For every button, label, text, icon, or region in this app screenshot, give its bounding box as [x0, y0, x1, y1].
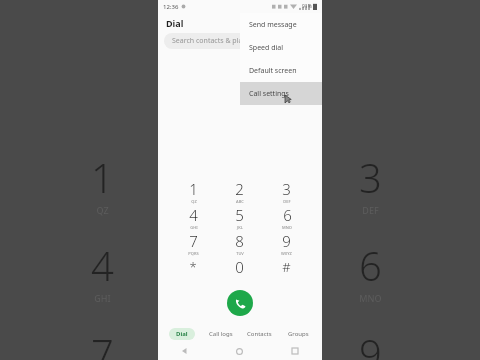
button[interactable]: Groups: [279, 326, 318, 342]
staticText: 3: [282, 179, 291, 199]
staticText: 7: [189, 231, 198, 251]
button[interactable]: 6: [263, 204, 310, 230]
staticText: Groups: [288, 330, 309, 338]
button[interactable]: *: [170, 256, 216, 282]
staticText: Speed dial: [249, 43, 284, 53]
button[interactable]: Search contacts & places: [164, 33, 316, 49]
button[interactable]: 8: [216, 230, 263, 256]
staticText: 1: [189, 179, 198, 199]
button[interactable]: Speed dial: [240, 36, 322, 59]
staticText: 6: [283, 205, 292, 225]
button[interactable]: Call logs: [201, 326, 240, 342]
staticText: 3: [359, 150, 382, 204]
button[interactable]: Back: [158, 342, 212, 360]
button[interactable]: 3: [263, 178, 310, 204]
staticText: Send message: [249, 20, 297, 30]
button[interactable]: Home: [212, 342, 267, 360]
button[interactable]: 7: [170, 230, 216, 256]
staticText: QZ: [191, 199, 197, 204]
button[interactable]: Recents: [267, 342, 322, 360]
staticText: 9: [282, 231, 291, 251]
staticText: DEF: [362, 204, 379, 216]
button[interactable]: #: [263, 256, 310, 282]
button[interactable]: Dial: [162, 326, 201, 342]
staticText: WXYZ: [281, 251, 292, 256]
staticText: Call settings: [249, 89, 289, 99]
staticText: Contacts: [247, 330, 272, 338]
staticText: 5: [235, 205, 244, 225]
button[interactable]: 5: [216, 204, 263, 230]
staticText: *: [189, 258, 197, 276]
staticText: GHI: [190, 225, 198, 230]
staticText: MNO: [359, 292, 382, 304]
staticText: 12:36: [163, 3, 179, 11]
staticText: JKL: [237, 225, 243, 230]
staticText: GHI: [94, 292, 111, 304]
button[interactable]: 2: [216, 178, 263, 204]
staticText: MNO: [282, 225, 292, 230]
staticText: 0: [235, 257, 244, 277]
staticText: 8: [235, 231, 244, 251]
staticText: 2: [235, 179, 244, 199]
staticText: Default screen: [249, 66, 297, 76]
staticText: QZ: [96, 204, 109, 216]
button[interactable]: 1: [170, 178, 216, 204]
button[interactable]: Send message: [240, 13, 322, 36]
staticText: TUV: [236, 251, 244, 256]
staticText: 91%: [302, 3, 312, 10]
button[interactable]: 0: [216, 256, 263, 282]
button[interactable]: Contacts: [240, 326, 279, 342]
staticText: 9: [359, 326, 382, 360]
staticText: 4: [91, 238, 114, 292]
button[interactable]: Call settings: [240, 82, 322, 105]
button[interactable]: Call: [227, 290, 253, 316]
staticText: Call logs: [209, 330, 233, 338]
staticText: 1: [91, 150, 114, 204]
staticText: PQRS: [188, 251, 199, 256]
staticText: DEF: [283, 199, 291, 204]
staticText: ABC: [236, 199, 244, 204]
staticText: Dial: [166, 17, 184, 29]
button[interactable]: 9: [263, 230, 310, 256]
staticText: #: [282, 258, 291, 276]
button[interactable]: Default screen: [240, 59, 322, 82]
staticText: 6: [359, 238, 382, 292]
staticText: 7: [91, 326, 114, 360]
staticText: Dial: [176, 330, 188, 338]
button[interactable]: 4: [170, 204, 216, 230]
staticText: Search contacts & places: [172, 36, 254, 46]
staticText: 4: [189, 205, 198, 225]
